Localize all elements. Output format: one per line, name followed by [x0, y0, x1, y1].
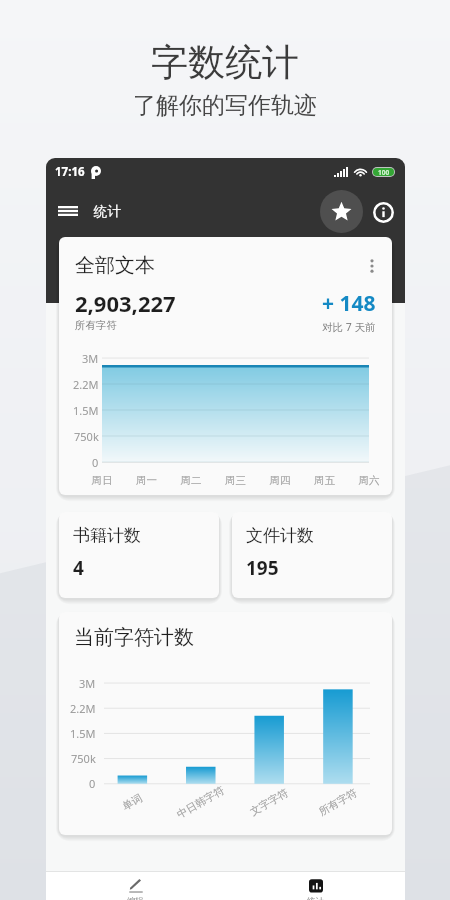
staticText: 当前字符计数 [74, 625, 194, 650]
button[interactable]: Favorite [320, 190, 363, 233]
staticText: 2,903,227 [75, 288, 176, 318]
staticText: + 148 [322, 289, 376, 318]
button[interactable]: More options [361, 255, 383, 277]
staticText: 字数统计 [151, 39, 299, 86]
button[interactable]: Statistics [225, 872, 405, 900]
staticText: 17:16 [55, 164, 85, 180]
staticText: 统计 [307, 896, 324, 900]
button[interactable]: 文件计数 [232, 512, 392, 598]
button[interactable]: Info [369, 198, 397, 226]
staticText: 195 [246, 555, 279, 581]
staticText: 所有字符 [75, 319, 117, 332]
staticText: 文件计数 [246, 525, 314, 546]
staticText: 全部文本 [75, 253, 361, 278]
staticText: 统计 [94, 203, 121, 220]
staticText: 对比 7 天前 [322, 320, 376, 334]
staticText: 编辑 [127, 896, 144, 900]
button[interactable]: 当前字符计数 [59, 612, 392, 835]
button[interactable]: Menu [46, 189, 90, 233]
button[interactable]: Edit [46, 872, 225, 900]
staticText: 4 [73, 555, 84, 581]
staticText: 书籍计数 [73, 525, 141, 546]
staticText: 100 [378, 168, 390, 176]
button[interactable]: 全部文本 [59, 237, 392, 495]
staticText: 了解你的写作轨迹 [133, 91, 317, 120]
button[interactable]: 书籍计数 [59, 512, 219, 598]
